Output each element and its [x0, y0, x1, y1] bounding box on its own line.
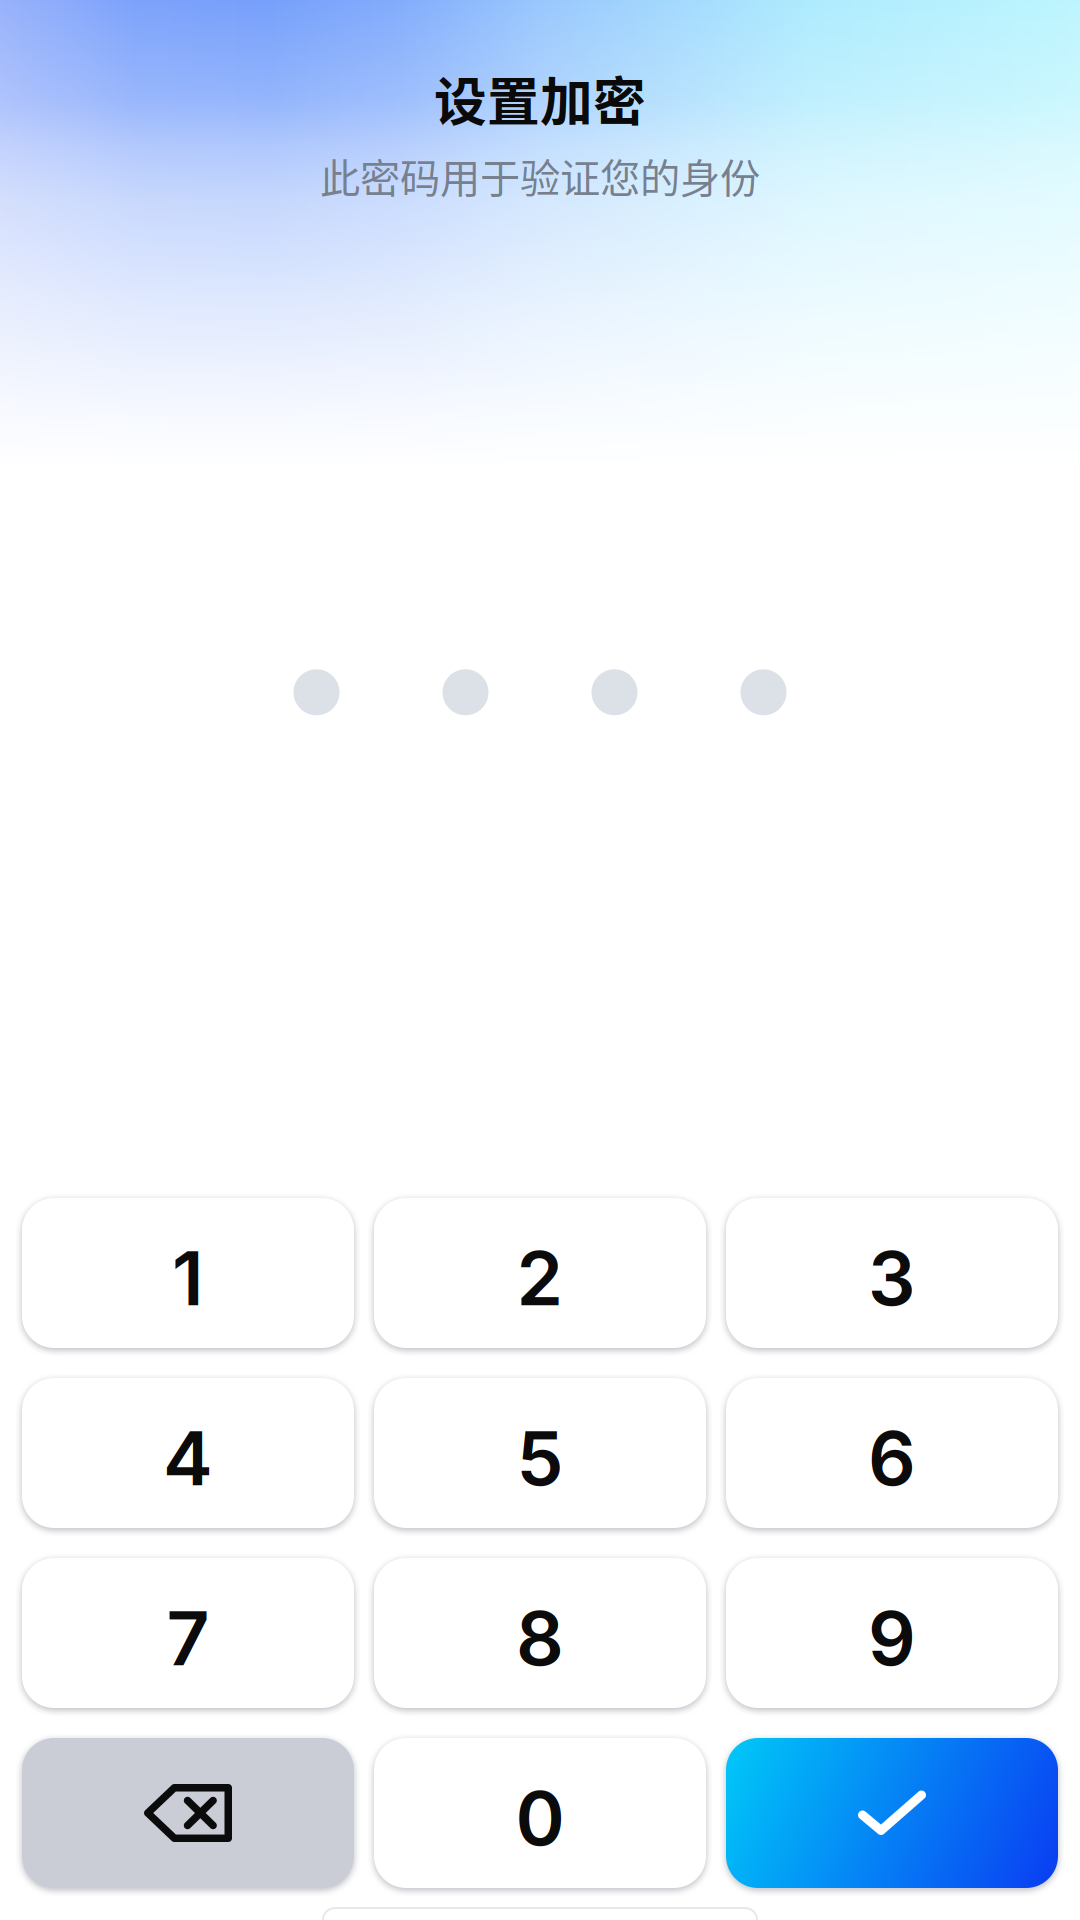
staticText: 此密码用于验证您的身份 — [320, 146, 760, 205]
staticText: 3 — [868, 1233, 916, 1323]
button[interactable]: 4 — [22, 1378, 354, 1528]
staticText: 4 — [163, 1413, 213, 1503]
staticText: 1 — [172, 1233, 204, 1323]
staticText: 8 — [516, 1593, 564, 1683]
button[interactable]: 5 — [374, 1378, 706, 1528]
button[interactable]: 3 — [726, 1198, 1058, 1348]
staticText: 9 — [868, 1593, 916, 1683]
staticText: 0 — [515, 1773, 564, 1863]
staticText: 6 — [868, 1413, 916, 1503]
staticText: 7 — [166, 1593, 209, 1683]
button[interactable]: 1 — [22, 1198, 354, 1348]
staticText: 2 — [516, 1233, 563, 1323]
button[interactable]: 6 — [726, 1378, 1058, 1528]
staticText: 5 — [516, 1413, 563, 1503]
button[interactable]: 2 — [374, 1198, 706, 1348]
staticText: 设置加密 — [434, 60, 646, 136]
button[interactable]: Delete — [22, 1738, 354, 1888]
button[interactable]: 0 — [374, 1738, 706, 1888]
button[interactable]: 9 — [726, 1558, 1058, 1708]
button[interactable]: 7 — [22, 1558, 354, 1708]
button[interactable]: 8 — [374, 1558, 706, 1708]
button[interactable]: Confirm — [726, 1738, 1058, 1888]
